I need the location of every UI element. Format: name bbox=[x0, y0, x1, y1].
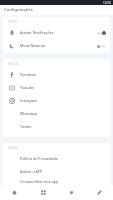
staticText: SOBRE bbox=[8, 146, 19, 150]
staticText: 12:30 bbox=[103, 1, 111, 5]
button[interactable]: Facebook bbox=[3, 68, 110, 81]
staticText: Twitter bbox=[20, 124, 32, 129]
button[interactable]: Aceitar Notificações bbox=[3, 26, 110, 39]
button[interactable]: Instagram bbox=[3, 94, 110, 107]
button[interactable]: Modo Noturno bbox=[3, 39, 110, 52]
button[interactable]: Edit bbox=[85, 185, 113, 200]
staticText: Configurações bbox=[4, 7, 33, 13]
staticText: GERAL bbox=[8, 20, 18, 24]
button[interactable]: Youtube bbox=[3, 81, 110, 94]
button[interactable]: Avaliar o APP bbox=[3, 165, 110, 178]
button[interactable]: Categories bbox=[29, 185, 57, 200]
button[interactable]: Compartilhar esse app bbox=[3, 178, 110, 185]
staticText: Compartilhar esse app bbox=[20, 179, 59, 184]
staticText: Modo Noturno bbox=[20, 43, 46, 48]
staticText: Facebook bbox=[20, 72, 37, 77]
button[interactable]: Home bbox=[0, 185, 29, 200]
button[interactable]: Twitter bbox=[3, 120, 110, 133]
staticText: Instagram bbox=[20, 98, 38, 103]
staticText: SOCIAL bbox=[8, 62, 20, 66]
staticText: Avaliar o APP bbox=[20, 169, 43, 174]
button[interactable]: Favorites bbox=[57, 185, 85, 200]
staticText: Aceitar Notificações bbox=[20, 30, 54, 35]
button[interactable]: Política de Privacidade bbox=[3, 152, 110, 165]
staticText: Política de Privacidade bbox=[20, 156, 58, 161]
staticText: Youtube bbox=[20, 85, 35, 90]
staticText: Whatsapp bbox=[20, 111, 38, 116]
button[interactable]: Whatsapp bbox=[3, 107, 110, 120]
